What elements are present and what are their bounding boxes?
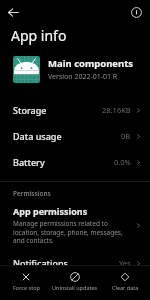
staticText: Notifications: [13, 257, 119, 269]
staticText: 28.16KB: [102, 105, 131, 115]
staticText: Permissions: [13, 189, 51, 198]
staticText: Advanced settings: [13, 290, 71, 298]
staticText: Version 2022-01-01 R: [48, 72, 118, 82]
button[interactable]: Notifications: [0, 250, 150, 276]
button[interactable]: Battery: [0, 149, 150, 175]
staticText: Storage: [13, 104, 102, 116]
staticText: Manage permissions related to location, …: [13, 219, 129, 245]
staticText: App info: [11, 26, 67, 45]
staticText: Uninstall updates: [52, 284, 98, 291]
staticText: Clear data: [112, 284, 139, 291]
button[interactable]: Clear data: [101, 270, 149, 293]
button[interactable]: Uninstall updates: [51, 270, 99, 293]
staticText: Yes: [119, 258, 131, 268]
button[interactable]: Back: [3, 2, 23, 22]
staticText: App permissions: [13, 205, 88, 217]
staticText: Battery: [13, 156, 114, 168]
staticText: 0B: [121, 131, 131, 141]
staticText: 0.0%: [114, 157, 131, 167]
button[interactable]: Help: [126, 2, 146, 22]
button[interactable]: Data usage: [0, 123, 150, 149]
button[interactable]: Storage: [0, 97, 150, 123]
staticText: Data usage: [13, 130, 121, 142]
button[interactable]: Main components: [0, 51, 150, 88]
button[interactable]: App permissions: [0, 200, 150, 250]
button[interactable]: Force stop: [2, 270, 50, 293]
staticText: Force stop: [13, 284, 40, 291]
staticText: Main components: [48, 57, 134, 70]
